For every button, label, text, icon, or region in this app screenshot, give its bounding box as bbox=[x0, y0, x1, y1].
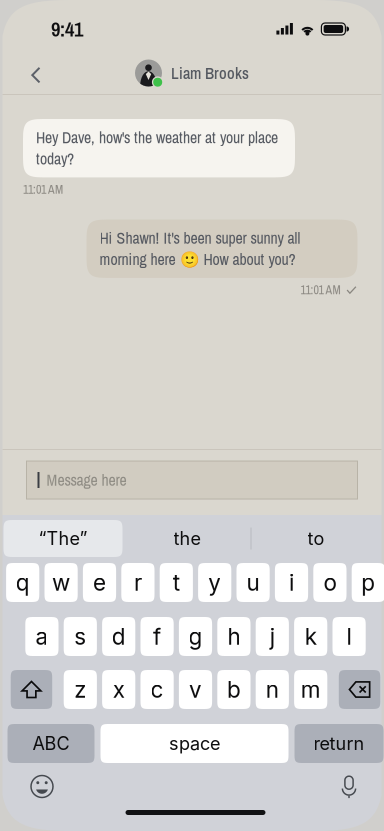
button[interactable]: Shift bbox=[11, 670, 52, 709]
staticText: v bbox=[189, 676, 202, 703]
button[interactable]: to bbox=[251, 520, 380, 557]
button[interactable]: f bbox=[140, 617, 174, 656]
staticText: return bbox=[313, 733, 364, 754]
button[interactable]: o bbox=[313, 563, 346, 602]
button[interactable]: b bbox=[217, 670, 250, 709]
staticText: Hey Dave, how's the weather at your plac… bbox=[36, 127, 278, 169]
staticText: s bbox=[74, 623, 86, 650]
button[interactable]: d bbox=[102, 617, 135, 656]
button[interactable]: t bbox=[160, 563, 193, 602]
staticText: w bbox=[52, 569, 70, 596]
button[interactable]: u bbox=[236, 563, 270, 602]
staticText: f bbox=[153, 623, 161, 650]
button[interactable]: Backspace bbox=[339, 670, 380, 709]
button[interactable]: space bbox=[100, 724, 288, 763]
button[interactable]: v bbox=[179, 670, 212, 709]
staticText: p bbox=[361, 569, 375, 596]
staticText: Hi Shawn! It's been super sunny all morn… bbox=[99, 228, 300, 270]
button[interactable]: h bbox=[217, 617, 250, 656]
staticText: d bbox=[112, 623, 126, 650]
button[interactable]: Back bbox=[2, 53, 55, 92]
staticText: ABC bbox=[32, 733, 69, 754]
staticText: “The” bbox=[38, 528, 87, 549]
staticText: h bbox=[227, 623, 240, 650]
staticText: t bbox=[173, 569, 180, 596]
staticText: to bbox=[307, 528, 324, 549]
button[interactable]: g bbox=[179, 617, 212, 656]
staticText: k bbox=[305, 623, 317, 650]
button[interactable]: k bbox=[294, 617, 327, 656]
staticText: Liam Brooks bbox=[171, 62, 249, 84]
staticText: y bbox=[208, 569, 221, 596]
staticText: g bbox=[188, 623, 202, 650]
button[interactable]: ABC bbox=[7, 724, 94, 763]
button[interactable]: q bbox=[6, 563, 39, 602]
button[interactable]: i bbox=[275, 563, 308, 602]
button[interactable]: j bbox=[256, 617, 289, 656]
staticText: i bbox=[289, 569, 294, 596]
staticText: b bbox=[227, 676, 241, 703]
staticText: the bbox=[173, 528, 200, 549]
button[interactable]: w bbox=[44, 563, 78, 602]
staticText: 11:01 AM bbox=[23, 181, 63, 198]
button[interactable]: a bbox=[25, 617, 58, 656]
button[interactable]: c bbox=[140, 670, 174, 709]
staticText: Message here bbox=[46, 469, 126, 491]
staticText: m bbox=[301, 676, 321, 703]
staticText: n bbox=[266, 676, 279, 703]
staticText: o bbox=[323, 569, 336, 596]
button[interactable]: Emoji bbox=[20, 764, 64, 808]
staticText: u bbox=[247, 569, 260, 596]
staticText: j bbox=[270, 623, 275, 650]
staticText: 9:41 bbox=[51, 15, 83, 43]
button[interactable]: p bbox=[352, 563, 384, 602]
staticText: l bbox=[347, 623, 352, 650]
button[interactable]: x bbox=[102, 670, 135, 709]
staticText: z bbox=[74, 676, 86, 703]
button[interactable]: the bbox=[122, 520, 251, 557]
button[interactable]: z bbox=[64, 670, 97, 709]
button[interactable]: n bbox=[256, 670, 289, 709]
button[interactable]: e bbox=[83, 563, 116, 602]
button[interactable]: s bbox=[64, 617, 97, 656]
button[interactable]: m bbox=[294, 670, 327, 709]
button[interactable]: return bbox=[294, 724, 383, 763]
staticText: q bbox=[16, 569, 30, 596]
staticText: r bbox=[134, 569, 142, 596]
button[interactable]: y bbox=[198, 563, 231, 602]
staticText: space bbox=[169, 733, 220, 754]
button[interactable]: Dictate bbox=[328, 764, 370, 808]
staticText: e bbox=[93, 569, 106, 596]
staticText: 11:01 AM bbox=[300, 282, 340, 298]
staticText: x bbox=[113, 676, 125, 703]
button[interactable]: l bbox=[332, 617, 366, 656]
staticText: c bbox=[151, 676, 164, 703]
staticText: a bbox=[35, 623, 48, 650]
button[interactable]: “The” bbox=[3, 520, 122, 557]
button[interactable]: r bbox=[121, 563, 154, 602]
